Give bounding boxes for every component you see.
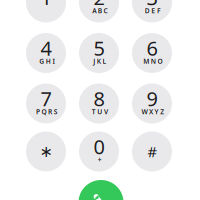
button[interactable]: 0: [79, 131, 119, 171]
staticText: 5: [93, 35, 104, 61]
staticText: 6: [146, 35, 157, 61]
staticText: DEF: [145, 6, 161, 15]
staticText: #: [147, 142, 156, 161]
button[interactable]: Call: [78, 180, 123, 200]
button[interactable]: 7: [26, 83, 66, 123]
staticText: TUV: [92, 107, 108, 116]
staticText: +: [98, 155, 102, 164]
button[interactable]: Pound: [132, 131, 172, 171]
button[interactable]: 2: [79, 0, 119, 22]
staticText: 4: [40, 35, 51, 61]
staticText: 7: [40, 85, 51, 112]
staticText: 1: [40, 0, 51, 11]
button[interactable]: 8: [79, 83, 119, 123]
button[interactable]: 9: [132, 83, 172, 123]
staticText: 9: [146, 85, 157, 112]
button[interactable]: 3: [132, 0, 172, 22]
button[interactable]: 5: [79, 33, 119, 73]
staticText: MNO: [143, 57, 162, 66]
staticText: ABC: [92, 6, 107, 15]
staticText: 3: [146, 0, 157, 11]
staticText: ∗: [39, 142, 52, 161]
staticText: 2: [93, 0, 104, 11]
button[interactable]: 6: [132, 33, 172, 73]
staticText: JKL: [93, 57, 106, 66]
button[interactable]: 1: [26, 0, 66, 22]
staticText: GHI: [39, 57, 54, 66]
staticText: 0: [93, 133, 104, 160]
button[interactable]: 4: [26, 33, 66, 73]
staticText: WXYZ: [141, 107, 164, 116]
button[interactable]: Star: [26, 131, 66, 171]
staticText: PQRS: [36, 107, 58, 116]
staticText: 8: [93, 85, 104, 112]
